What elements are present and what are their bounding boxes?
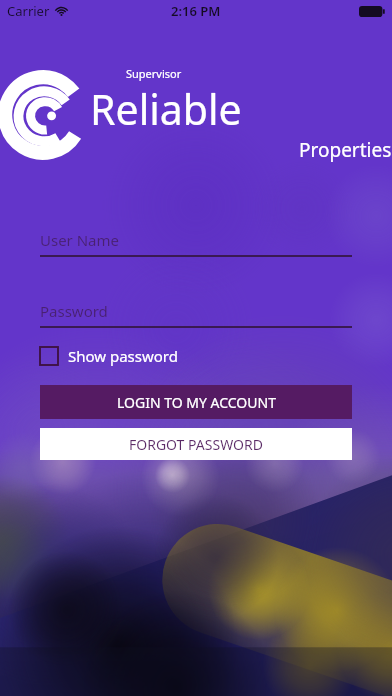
staticText: 2:16 PM	[171, 2, 221, 20]
button[interactable]: Password	[40, 296, 352, 326]
staticText: Show password	[68, 346, 178, 366]
button[interactable]: FORGOT PASSWORD	[40, 428, 352, 460]
staticText: LOGIN TO MY ACCOUNT	[117, 393, 276, 412]
staticText: User Name	[40, 230, 120, 250]
staticText: Carrier	[7, 2, 50, 20]
button[interactable]: LOGIN TO MY ACCOUNT	[40, 385, 352, 419]
other: Reliable Properties logo	[0, 72, 86, 158]
staticText: Reliable	[90, 81, 242, 137]
staticText: Properties	[299, 137, 392, 163]
button[interactable]: Show password	[40, 343, 178, 369]
staticText: Supervisor	[126, 66, 182, 81]
staticText: Password	[40, 301, 108, 321]
button[interactable]: User Name	[40, 225, 352, 255]
other: Battery	[359, 6, 385, 17]
staticText: FORGOT PASSWORD	[129, 435, 263, 454]
